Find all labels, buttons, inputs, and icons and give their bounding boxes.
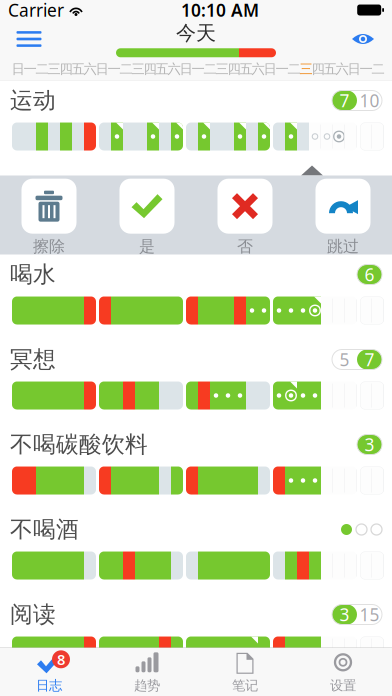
staticText: 7: [364, 348, 374, 371]
staticText: 15: [359, 603, 379, 626]
staticText: Carrier: [8, 0, 64, 21]
staticText: 冥想: [10, 346, 56, 373]
staticText: 五: [155, 61, 168, 77]
staticText: 六: [83, 61, 96, 77]
staticText: 今天: [176, 21, 216, 45]
staticText: 日: [11, 61, 24, 77]
staticText: 趋势: [134, 677, 160, 694]
staticText: 一: [23, 61, 36, 77]
staticText: 阅读: [10, 601, 56, 628]
staticText: 擦除: [33, 237, 65, 256]
staticText: 跳过: [327, 237, 359, 256]
staticText: 日志: [36, 677, 62, 694]
staticText: 二: [119, 61, 132, 77]
staticText: 笔记: [232, 677, 258, 694]
button[interactable]: 擦除: [0, 175, 98, 254]
button[interactable]: 否: [196, 175, 294, 254]
staticText: 三: [131, 61, 144, 77]
button[interactable]: Menu: [6, 20, 52, 58]
button[interactable]: 是: [98, 175, 196, 254]
staticText: 日: [179, 61, 192, 77]
staticText: 六: [251, 61, 264, 77]
staticText: 六: [335, 61, 348, 77]
staticText: 三: [299, 61, 312, 77]
staticText: 日: [263, 61, 276, 77]
staticText: 10: [359, 89, 379, 112]
staticText: 6: [364, 263, 374, 286]
button[interactable]: 笔记: [196, 648, 294, 696]
staticText: 五: [239, 61, 252, 77]
staticText: 7: [339, 89, 349, 112]
button[interactable]: Preview: [340, 20, 386, 58]
staticText: 5: [339, 348, 349, 371]
staticText: 一: [191, 61, 204, 77]
staticText: 不喝碳酸饮料: [10, 431, 148, 458]
staticText: 二: [35, 61, 48, 77]
staticText: 3: [364, 433, 374, 456]
staticText: 3: [339, 603, 349, 626]
button[interactable]: 设置: [294, 648, 392, 696]
staticText: 二: [203, 61, 216, 77]
button[interactable]: 跳过: [294, 175, 392, 254]
staticText: 一: [107, 61, 120, 77]
staticText: 二: [371, 61, 384, 77]
staticText: 一: [275, 61, 288, 77]
staticText: 五: [71, 61, 84, 77]
staticText: 六: [167, 61, 180, 77]
button[interactable]: 8: [0, 648, 98, 696]
staticText: 否: [237, 237, 253, 256]
staticText: 四: [59, 61, 72, 77]
staticText: 是: [139, 237, 155, 256]
staticText: 10:10 AM: [181, 0, 259, 21]
staticText: 日: [347, 61, 360, 77]
staticText: 日: [95, 61, 108, 77]
staticText: 四: [227, 61, 240, 77]
staticText: 三: [47, 61, 60, 77]
staticText: 喝水: [10, 261, 56, 288]
button[interactable]: 趋势: [98, 648, 196, 696]
staticText: 8: [57, 650, 65, 669]
staticText: 四: [311, 61, 324, 77]
staticText: 一: [359, 61, 372, 77]
staticText: 四: [143, 61, 156, 77]
staticText: 五: [323, 61, 336, 77]
staticText: 三: [215, 61, 228, 77]
staticText: 二: [287, 61, 300, 77]
staticText: 设置: [330, 677, 356, 694]
staticText: 不喝酒: [10, 516, 79, 543]
staticText: 运动: [10, 87, 56, 114]
